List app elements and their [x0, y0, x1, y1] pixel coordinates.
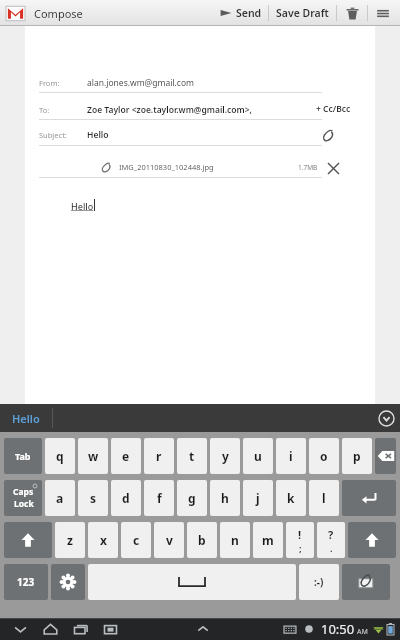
button[interactable]: i — [276, 438, 306, 474]
staticText: Zoe Taylor <zoe.taylor.wm@gmail.com>, — [87, 104, 252, 116]
staticText: u — [254, 448, 262, 464]
staticText: Tab — [15, 450, 31, 462]
staticText: ; — [299, 542, 302, 554]
staticText: r — [156, 448, 162, 464]
button[interactable]: Hello — [0, 404, 52, 432]
button[interactable]: Key — [348, 522, 396, 558]
button[interactable]: + Cc/Bcc — [312, 100, 355, 118]
staticText: q — [56, 448, 64, 464]
staticText: j — [256, 490, 260, 506]
button[interactable]: u — [243, 438, 273, 474]
button[interactable]: Subject: — [39, 126, 322, 144]
button[interactable]: Gmail, up — [4, 2, 26, 24]
staticText: Hello — [12, 411, 40, 426]
staticText: Hello — [87, 129, 109, 141]
staticText: IMG_20110830_102448.jpg — [119, 162, 214, 172]
staticText: w — [88, 448, 99, 464]
staticText: . — [330, 542, 333, 554]
button[interactable]: y — [210, 438, 240, 474]
button[interactable]: Hello — [55, 192, 345, 392]
button[interactable]: Full screen — [98, 618, 122, 640]
button[interactable]: Home — [38, 618, 62, 640]
button[interactable]: Tab — [4, 438, 42, 474]
button[interactable]: :-) — [299, 564, 339, 600]
staticText: y — [222, 448, 229, 464]
staticText: 123 — [17, 575, 35, 589]
button[interactable]: Back — [8, 618, 32, 640]
staticText: Save Draft — [276, 6, 329, 20]
button[interactable]: n — [220, 522, 250, 558]
button[interactable]: 123 — [4, 564, 48, 600]
button[interactable]: m — [253, 522, 283, 558]
staticText: f — [157, 490, 162, 506]
button[interactable]: b — [187, 522, 217, 558]
button[interactable]: Recent apps — [68, 618, 92, 640]
button[interactable]: Save Draft — [269, 0, 336, 26]
staticText: ? — [328, 527, 334, 542]
staticText: i — [289, 448, 293, 464]
staticText: s — [90, 490, 97, 506]
button[interactable]: More options — [368, 0, 398, 26]
button[interactable]: Hide keyboard suggestions — [372, 404, 400, 432]
staticText: l — [322, 490, 326, 506]
button[interactable]: Key — [51, 564, 85, 600]
button[interactable]: e — [111, 438, 141, 474]
button[interactable]: r — [144, 438, 174, 474]
button[interactable]: Send — [214, 0, 268, 26]
button[interactable]: IMG_20110830_102448.jpg — [39, 157, 322, 177]
staticText: d — [122, 490, 130, 506]
button[interactable]: Key — [375, 438, 396, 474]
button[interactable]: Key — [4, 522, 52, 558]
staticText: h — [221, 490, 229, 506]
button[interactable]: g — [177, 480, 207, 516]
staticText: Caps — [13, 486, 34, 498]
staticText: AM — [357, 627, 368, 637]
button[interactable]: o — [309, 438, 339, 474]
staticText: v — [166, 532, 173, 548]
button[interactable]: z — [55, 522, 85, 558]
button[interactable]: d — [111, 480, 141, 516]
button[interactable]: Caps Lock — [4, 480, 42, 516]
staticText: 1.7MB — [298, 163, 318, 172]
button[interactable]: f — [144, 480, 174, 516]
button[interactable]: Key — [342, 564, 390, 600]
staticText: Send — [236, 6, 262, 20]
button[interactable]: Key — [342, 480, 396, 516]
staticText: n — [231, 532, 239, 548]
staticText: x — [100, 532, 107, 548]
button[interactable]: j — [243, 480, 273, 516]
button[interactable]: l — [309, 480, 339, 516]
staticText: c — [133, 532, 140, 548]
staticText: ! — [298, 527, 302, 542]
staticText: Subject: — [39, 130, 67, 140]
button[interactable]: h — [210, 480, 240, 516]
button[interactable]: q — [45, 438, 75, 474]
staticText: b — [198, 532, 206, 548]
button[interactable]: ! — [286, 522, 314, 558]
staticText: t — [189, 448, 195, 464]
staticText: + Cc/Bcc — [316, 103, 351, 115]
button[interactable]: t — [177, 438, 207, 474]
button[interactable]: s — [78, 480, 108, 516]
button[interactable]: c — [121, 522, 151, 558]
staticText: :-) — [314, 575, 324, 589]
button[interactable]: From: — [39, 74, 322, 92]
button[interactable]: p — [342, 438, 372, 474]
staticText: To: — [39, 105, 50, 115]
button[interactable]: Discard — [337, 0, 367, 26]
button[interactable]: v — [154, 522, 184, 558]
button[interactable]: k — [276, 480, 306, 516]
button[interactable]: a — [45, 480, 75, 516]
staticText: a — [56, 490, 64, 506]
button[interactable]: Attach file — [317, 124, 339, 146]
button[interactable]: Space — [88, 564, 296, 600]
staticText: z — [67, 532, 73, 548]
staticText: From: — [39, 78, 60, 88]
staticText: Hello — [71, 200, 94, 212]
button[interactable]: To: — [39, 101, 322, 119]
staticText: p — [353, 448, 361, 464]
button[interactable]: Remove attachment — [322, 157, 344, 179]
button[interactable]: x — [88, 522, 118, 558]
button[interactable]: w — [78, 438, 108, 474]
button[interactable]: ? — [317, 522, 345, 558]
